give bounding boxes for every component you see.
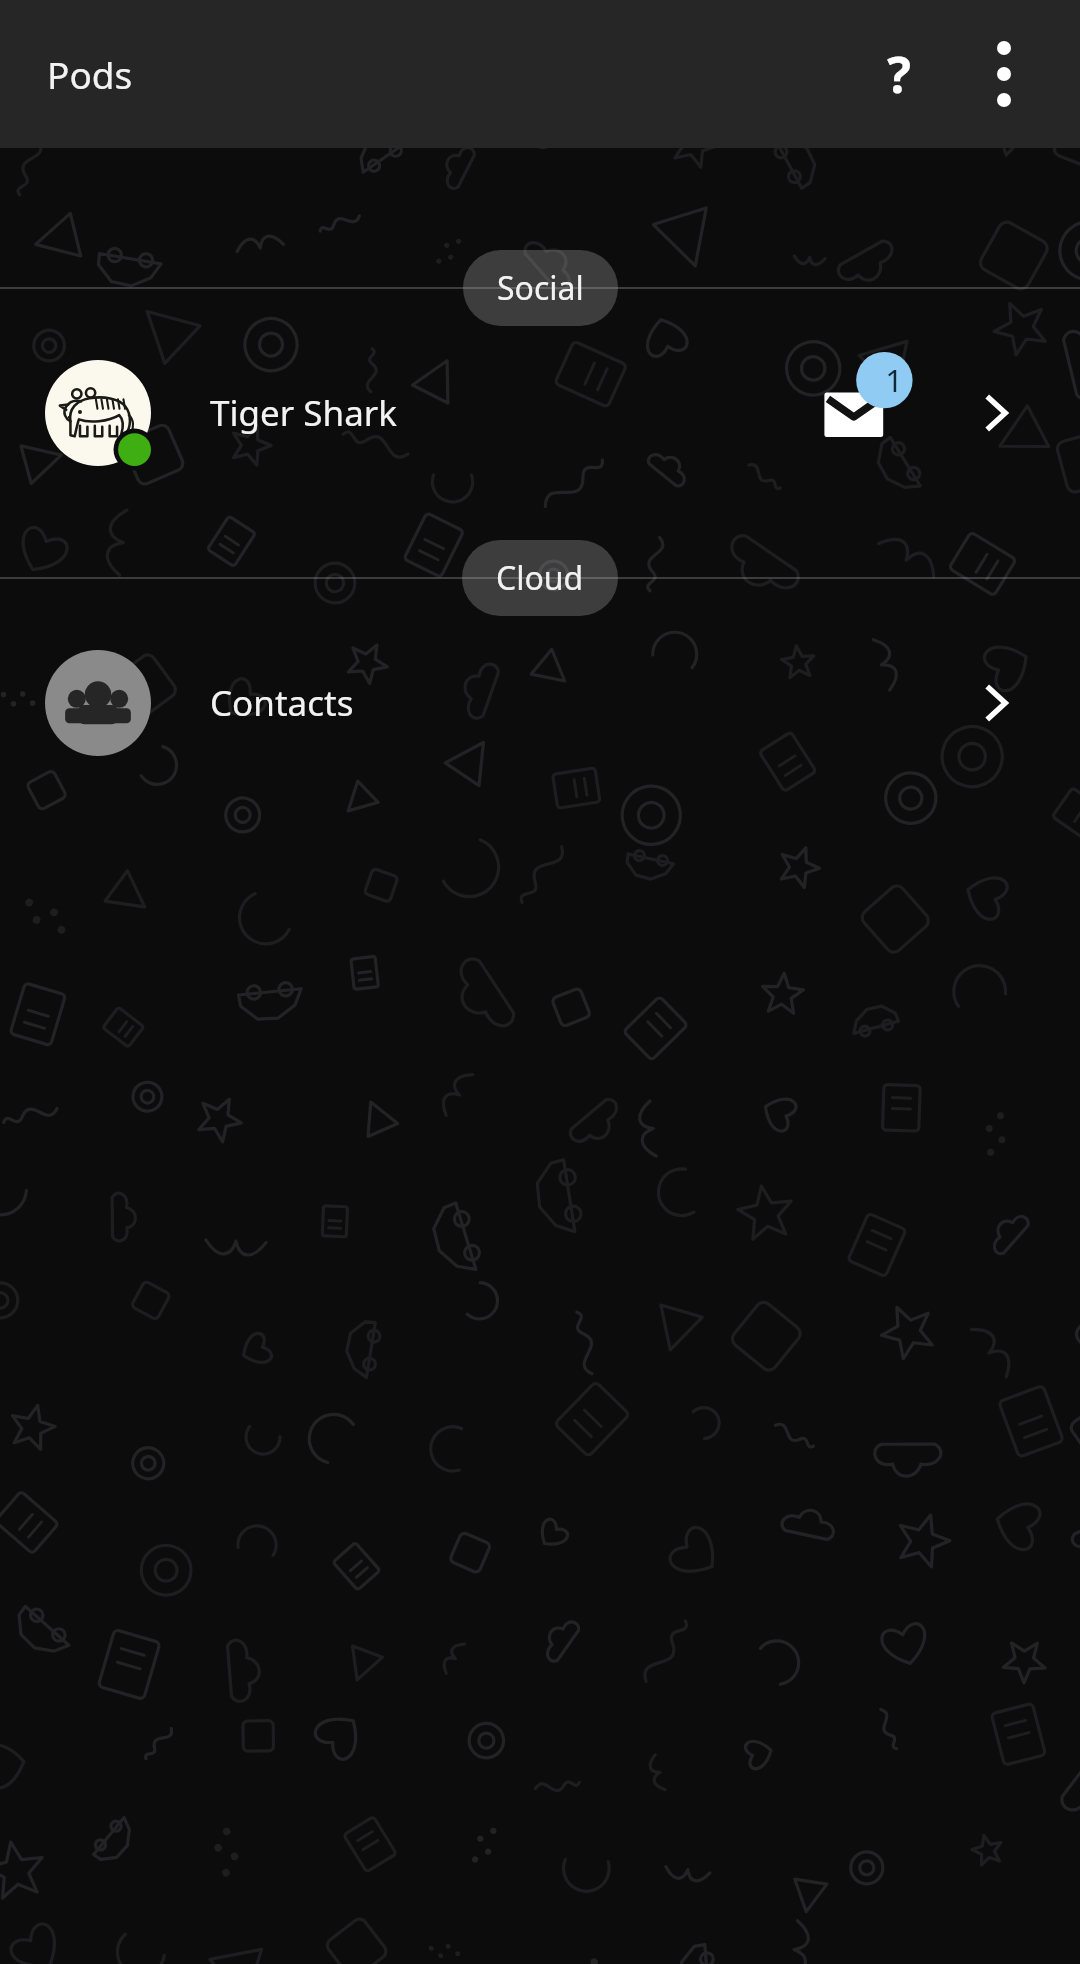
staticText: Cloud [496, 556, 584, 600]
button[interactable]: Help [844, 0, 954, 148]
staticText: 1 [885, 359, 903, 401]
button[interactable]: Open Contacts [942, 638, 1052, 768]
staticText: Contacts [210, 679, 942, 727]
button[interactable]: 1 unread message [802, 348, 932, 478]
staticText: Social [497, 266, 584, 310]
button[interactable]: More options [954, 0, 1054, 148]
button[interactable]: Cloud [462, 540, 618, 616]
button[interactable]: Contacts [0, 627, 1080, 779]
staticText: Tiger Shark [210, 389, 802, 437]
button[interactable]: Open Tiger Shark [942, 348, 1052, 478]
button[interactable]: Tiger Shark [0, 337, 1080, 489]
staticText: Pods [47, 49, 133, 99]
staticText: ? [887, 40, 911, 108]
button[interactable]: Social [463, 250, 618, 326]
